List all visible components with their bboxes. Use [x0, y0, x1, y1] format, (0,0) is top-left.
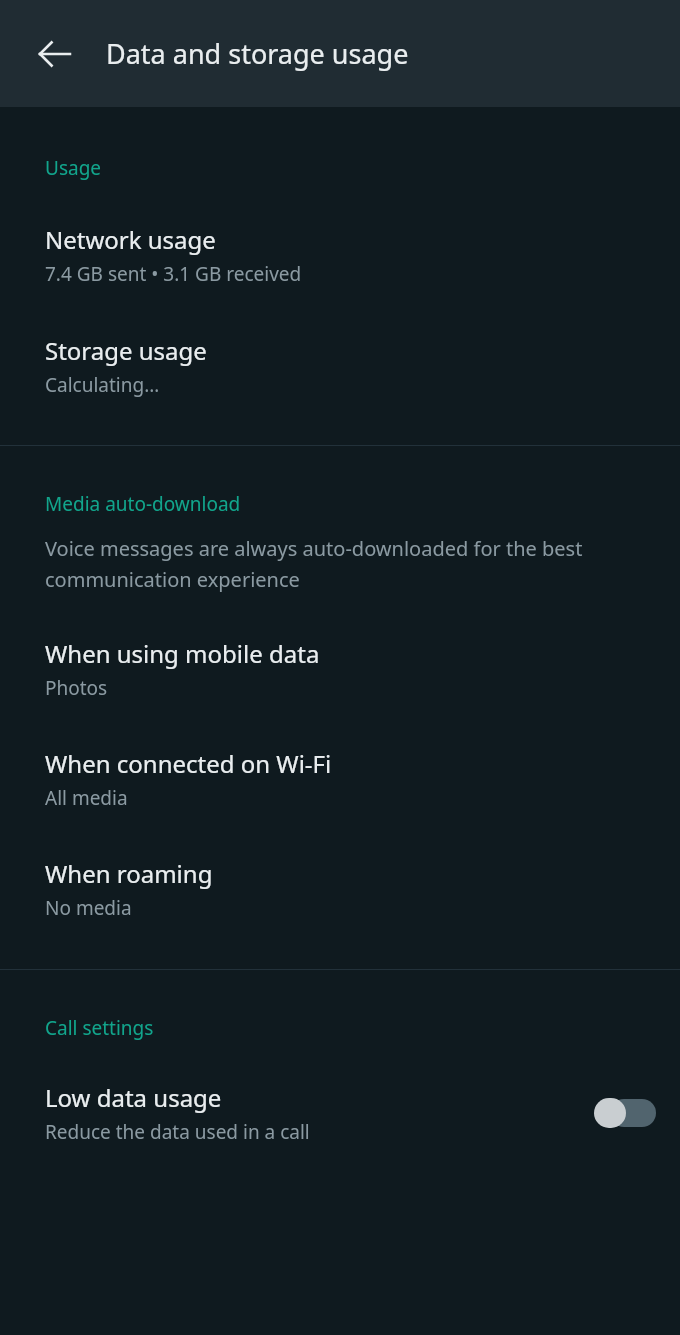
staticText: When using mobile data	[45, 637, 320, 670]
staticText: 7.4 GB sent • 3.1 GB received	[45, 261, 302, 287]
staticText: Low data usage	[45, 1081, 222, 1114]
staticText: When roaming	[45, 857, 213, 890]
staticText: Usage	[45, 155, 102, 181]
button[interactable]: Storage usage	[0, 322, 680, 410]
button[interactable]: Network usage	[0, 211, 680, 299]
staticText: Media auto-download	[45, 491, 241, 517]
staticText: When connected on Wi-Fi	[45, 747, 332, 780]
staticText: Network usage	[45, 223, 216, 256]
staticText: Photos	[45, 675, 108, 701]
button[interactable]: When roaming	[0, 845, 680, 933]
button[interactable]: Low data usage	[0, 1069, 680, 1157]
staticText: All media	[45, 785, 128, 811]
staticText: Data and storage usage	[106, 35, 409, 72]
staticText: Voice messages are always auto-downloade…	[45, 535, 620, 592]
button[interactable]: Back	[26, 25, 84, 83]
staticText: Call settings	[45, 1015, 154, 1041]
staticText: Reduce the data used in a call	[45, 1119, 310, 1145]
staticText: No media	[45, 895, 132, 921]
staticText: Calculating…	[45, 372, 160, 398]
button[interactable]: When connected on Wi-Fi	[0, 735, 680, 823]
button[interactable]: When using mobile data	[0, 625, 680, 713]
staticText: Storage usage	[45, 334, 207, 367]
